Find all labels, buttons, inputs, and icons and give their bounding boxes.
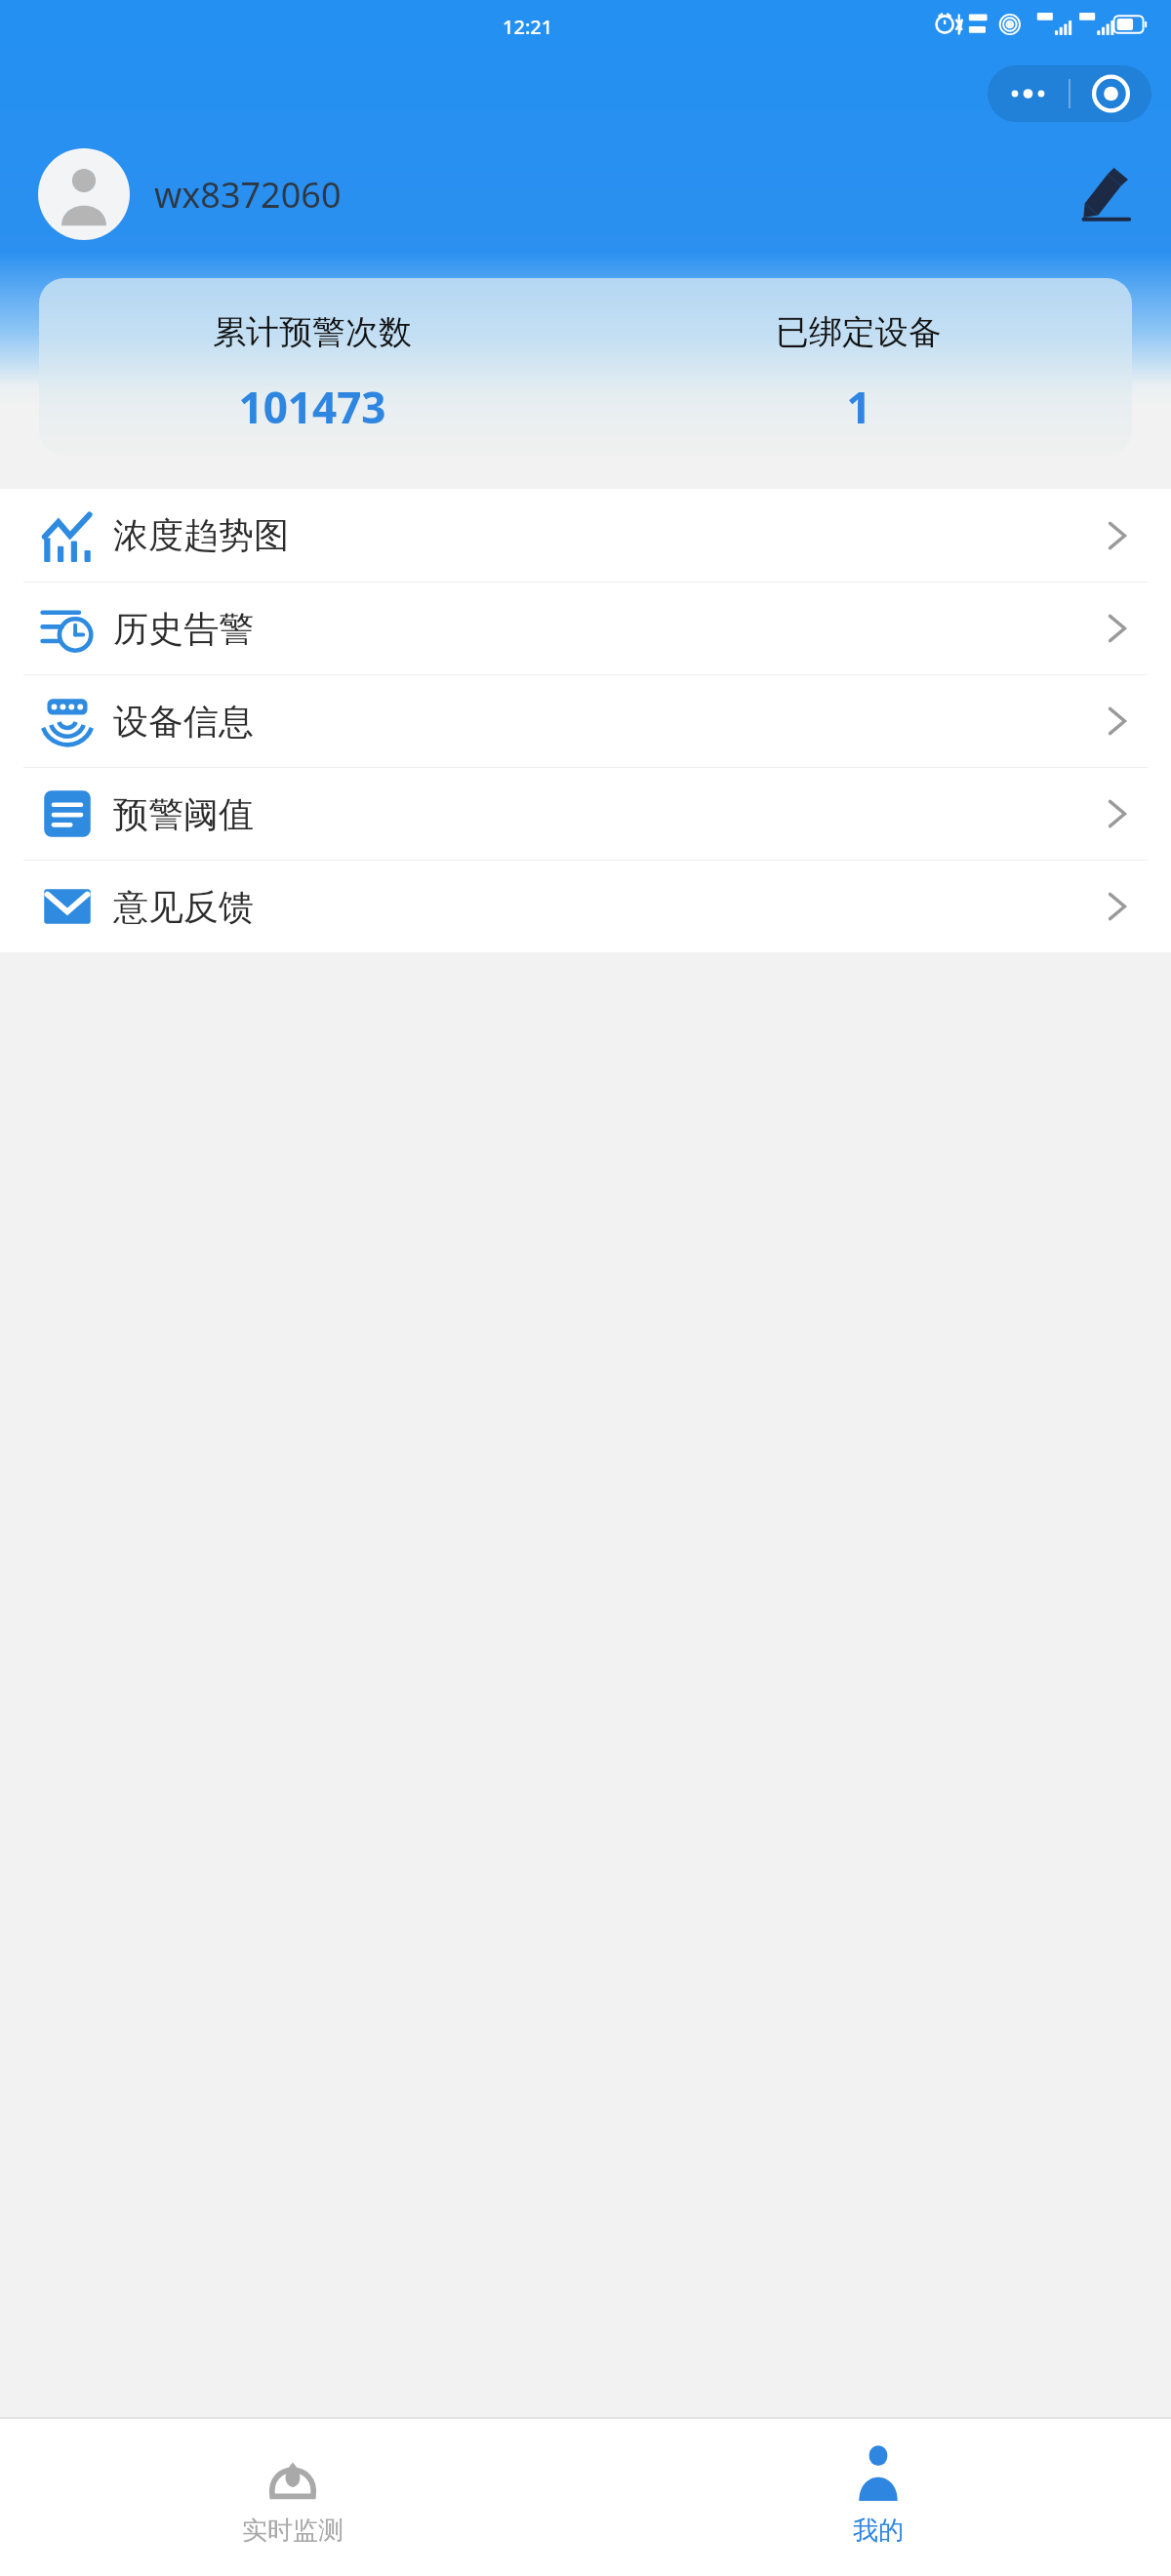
button[interactable]: More options (988, 65, 1151, 122)
button[interactable]: 意见反馈 (0, 861, 1171, 952)
button[interactable]: 我的 (585, 2419, 1171, 2576)
staticText: 我的 (853, 2515, 904, 2547)
staticText: 1 (846, 378, 871, 436)
staticText: 预警阈值 (113, 792, 254, 836)
staticText: 意见反馈 (113, 885, 254, 929)
staticText: 已绑定设备 (776, 311, 942, 353)
button[interactable]: 实时监测 (0, 2419, 585, 2576)
button[interactable]: 浓度趋势图 (0, 489, 1171, 582)
button[interactable]: Edit profile (1068, 157, 1142, 231)
button[interactable]: 设备信息 (0, 675, 1171, 767)
staticText: 累计预警次数 (213, 311, 412, 353)
staticText: 历史告警 (113, 607, 254, 651)
staticText: 浓度趋势图 (113, 513, 289, 557)
button[interactable]: 历史告警 (0, 583, 1171, 674)
staticText: wx8372060 (154, 171, 342, 219)
staticText: 101473 (238, 378, 386, 436)
staticText: 设备信息 (113, 700, 254, 744)
button[interactable]: 累计预警次数 (39, 278, 1132, 456)
button[interactable]: Avatar (38, 148, 130, 240)
staticText: 12:21 (503, 14, 553, 40)
button[interactable]: 预警阈值 (0, 768, 1171, 860)
staticText: 实时监测 (242, 2515, 343, 2547)
